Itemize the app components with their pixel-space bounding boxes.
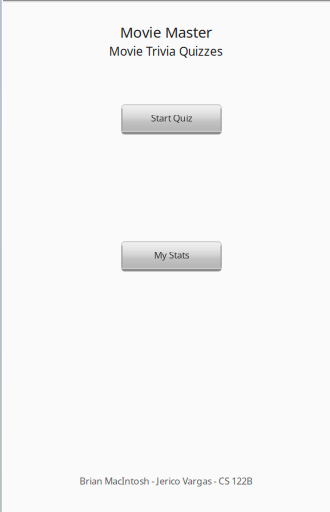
button[interactable]: Start Quiz (121, 104, 221, 134)
staticText: Start Quiz (151, 112, 192, 124)
staticText: Movie Trivia Quizzes (109, 43, 223, 59)
button[interactable]: My Stats (121, 241, 221, 271)
staticText: My Stats (154, 249, 189, 261)
staticText: Brian MacIntosh - Jerico Vargas - CS 122… (79, 475, 252, 487)
staticText: Movie Master (120, 22, 212, 42)
